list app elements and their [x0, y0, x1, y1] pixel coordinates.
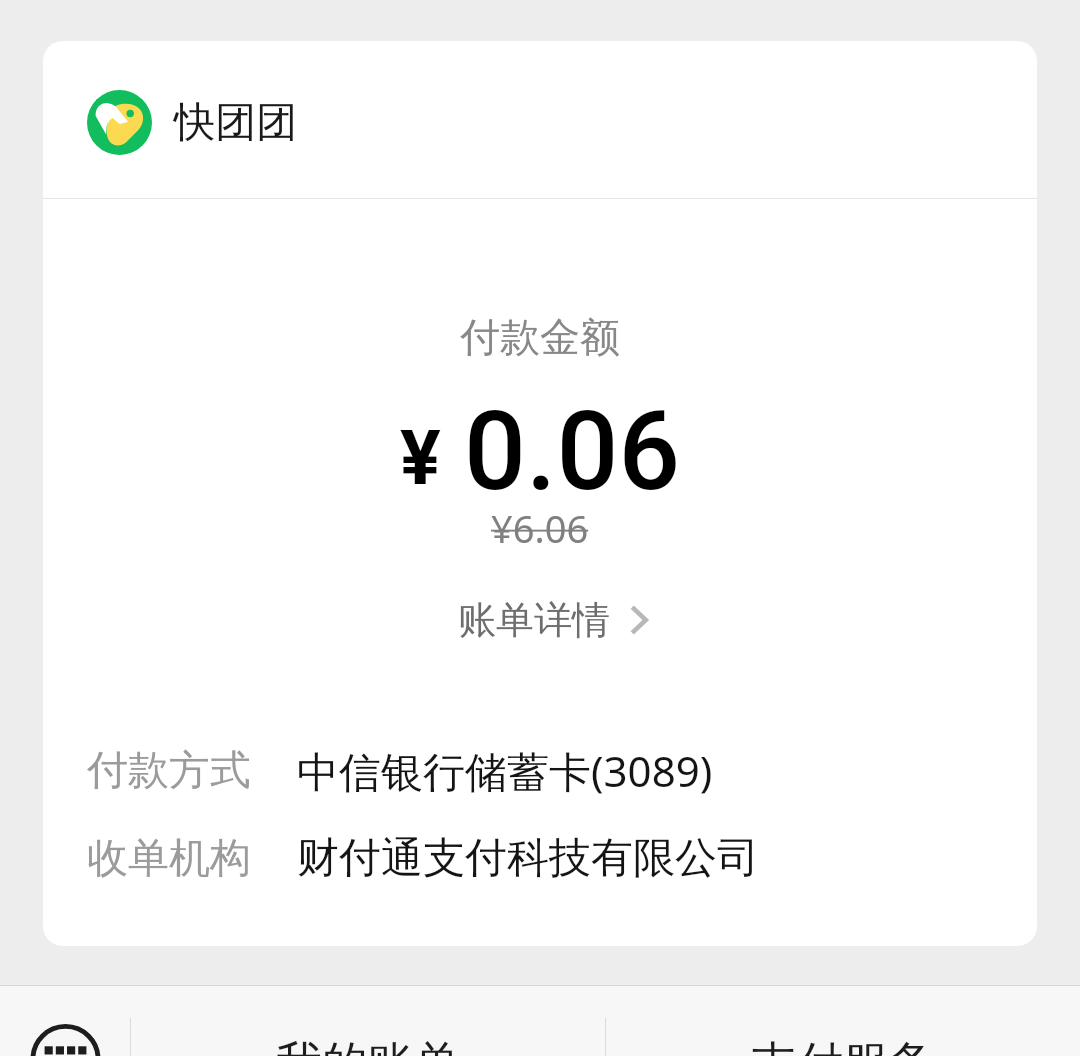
- button[interactable]: 我的账单: [131, 986, 605, 1056]
- staticText: ¥6.06: [491, 502, 589, 554]
- staticText: 我的账单: [276, 1035, 460, 1056]
- button[interactable]: 账单详情: [422, 590, 658, 650]
- staticText: 财付通支付科技有限公司: [297, 832, 759, 885]
- staticText: 0.06: [464, 388, 681, 516]
- staticText: 中信银行储蓄卡(3089): [297, 742, 713, 799]
- button[interactable]: 快团团: [43, 41, 1037, 198]
- staticText: 支付服务: [751, 1035, 935, 1056]
- staticText: 快团团: [174, 97, 297, 149]
- staticText: ¥: [400, 413, 441, 502]
- button[interactable]: 支付服务: [606, 986, 1080, 1056]
- staticText: 收单机构: [87, 833, 251, 885]
- staticText: 付款金额: [460, 312, 620, 362]
- staticText: 账单详情: [458, 596, 610, 644]
- staticText: 付款方式: [87, 745, 251, 797]
- button[interactable]: Keypad: [0, 986, 130, 1056]
